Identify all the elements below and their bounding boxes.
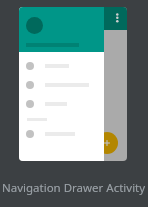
button[interactable] [19,58,104,74]
button[interactable] [19,96,104,112]
button[interactable]: More options [113,13,122,25]
button[interactable] [19,77,104,93]
staticText: Navigation Drawer Activity [2,180,146,196]
button[interactable] [19,126,104,142]
button[interactable]: Add [96,132,118,154]
